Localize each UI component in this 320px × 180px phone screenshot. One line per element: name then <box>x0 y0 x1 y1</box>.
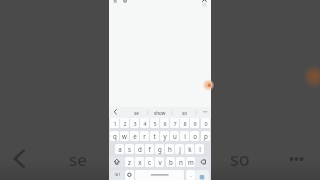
button[interactable]: 7 <box>170 118 179 128</box>
staticText: t <box>153 132 156 140</box>
button[interactable]: . <box>186 170 195 180</box>
button[interactable]: 5 <box>150 118 159 128</box>
button[interactable]: g <box>155 144 164 154</box>
staticText: so <box>182 110 187 116</box>
button[interactable]: f <box>145 144 154 154</box>
staticText: f <box>148 145 151 153</box>
staticText: l <box>199 145 201 153</box>
staticText: z <box>128 158 131 166</box>
button[interactable] <box>125 170 134 180</box>
staticText: c <box>148 158 151 166</box>
staticText: 1 <box>113 120 117 127</box>
staticText: s <box>128 145 131 153</box>
button[interactable]: s <box>125 144 134 154</box>
button[interactable]: 3 <box>130 118 139 128</box>
staticText: h <box>168 145 172 153</box>
staticText: r <box>143 132 146 140</box>
button[interactable]: n <box>176 157 185 167</box>
staticText: o <box>193 132 197 140</box>
staticText: n <box>179 158 183 166</box>
staticText: x <box>138 158 142 166</box>
staticText: q <box>113 132 117 140</box>
staticText: g <box>158 145 162 153</box>
button[interactable]: b <box>166 157 175 167</box>
button[interactable]: show <box>148 107 172 119</box>
staticText: y <box>163 132 167 140</box>
button[interactable]: x <box>135 157 144 167</box>
staticText: v <box>158 158 162 166</box>
staticText: 7 <box>173 120 177 127</box>
button[interactable]: se <box>124 107 148 119</box>
button[interactable]: l <box>195 144 204 154</box>
button[interactable]: z <box>125 157 134 167</box>
button[interactable]: u <box>170 131 179 141</box>
staticText: j <box>179 145 181 153</box>
button[interactable]: c <box>145 157 154 167</box>
staticText: u <box>173 132 177 140</box>
button[interactable] <box>195 170 209 180</box>
staticText: 4 <box>143 120 147 127</box>
button[interactable] <box>135 170 184 180</box>
button[interactable]: i <box>180 131 189 141</box>
button[interactable]: 4 <box>140 118 149 128</box>
staticText: 6 <box>163 120 167 127</box>
button[interactable]: h <box>165 144 174 154</box>
staticText: p <box>204 132 208 140</box>
staticText: . <box>190 171 192 179</box>
button[interactable]: so <box>172 107 196 119</box>
staticText: 2 <box>123 120 127 127</box>
button[interactable]: e <box>130 131 139 141</box>
button[interactable] <box>202 79 215 92</box>
button[interactable]: w <box>120 131 129 141</box>
button[interactable]: d <box>135 144 144 154</box>
button[interactable]: o <box>190 131 199 141</box>
button[interactable]: 1 <box>110 118 119 128</box>
staticText: e <box>133 132 137 140</box>
staticText: 0 <box>204 120 208 127</box>
button[interactable]: 2 <box>120 118 129 128</box>
button[interactable]: a <box>115 144 124 154</box>
staticText: se <box>69 148 88 171</box>
button[interactable] <box>195 157 209 167</box>
button[interactable]: y <box>160 131 169 141</box>
staticText: i <box>184 132 186 140</box>
staticText: a <box>118 145 122 153</box>
staticText: m <box>188 158 194 166</box>
staticText: d <box>138 145 142 153</box>
staticText: 9 <box>193 120 197 127</box>
button[interactable]: p <box>201 131 210 141</box>
button[interactable]: 9 <box>190 118 199 128</box>
button[interactable]: q <box>110 131 119 141</box>
staticText: 5 <box>153 120 157 127</box>
button[interactable]: 6 <box>160 118 169 128</box>
button[interactable]: !#1 <box>110 170 124 180</box>
staticText: 8 <box>183 120 187 127</box>
staticText: w <box>122 132 127 140</box>
staticText: b <box>169 158 173 166</box>
button[interactable]: m <box>186 157 195 167</box>
staticText: k <box>188 145 192 153</box>
staticText: 3 <box>133 120 137 127</box>
button[interactable]: r <box>140 131 149 141</box>
staticText: !#1 <box>114 172 121 178</box>
staticText: se <box>134 110 139 116</box>
button[interactable]: 8 <box>180 118 189 128</box>
staticText: show <box>154 110 166 116</box>
button[interactable]: v <box>155 157 164 167</box>
button[interactable]: 0 <box>201 118 210 128</box>
staticText: so <box>230 147 250 172</box>
button[interactable] <box>110 157 124 167</box>
button[interactable]: k <box>185 144 194 154</box>
button[interactable]: j <box>175 144 184 154</box>
button[interactable]: t <box>150 131 159 141</box>
